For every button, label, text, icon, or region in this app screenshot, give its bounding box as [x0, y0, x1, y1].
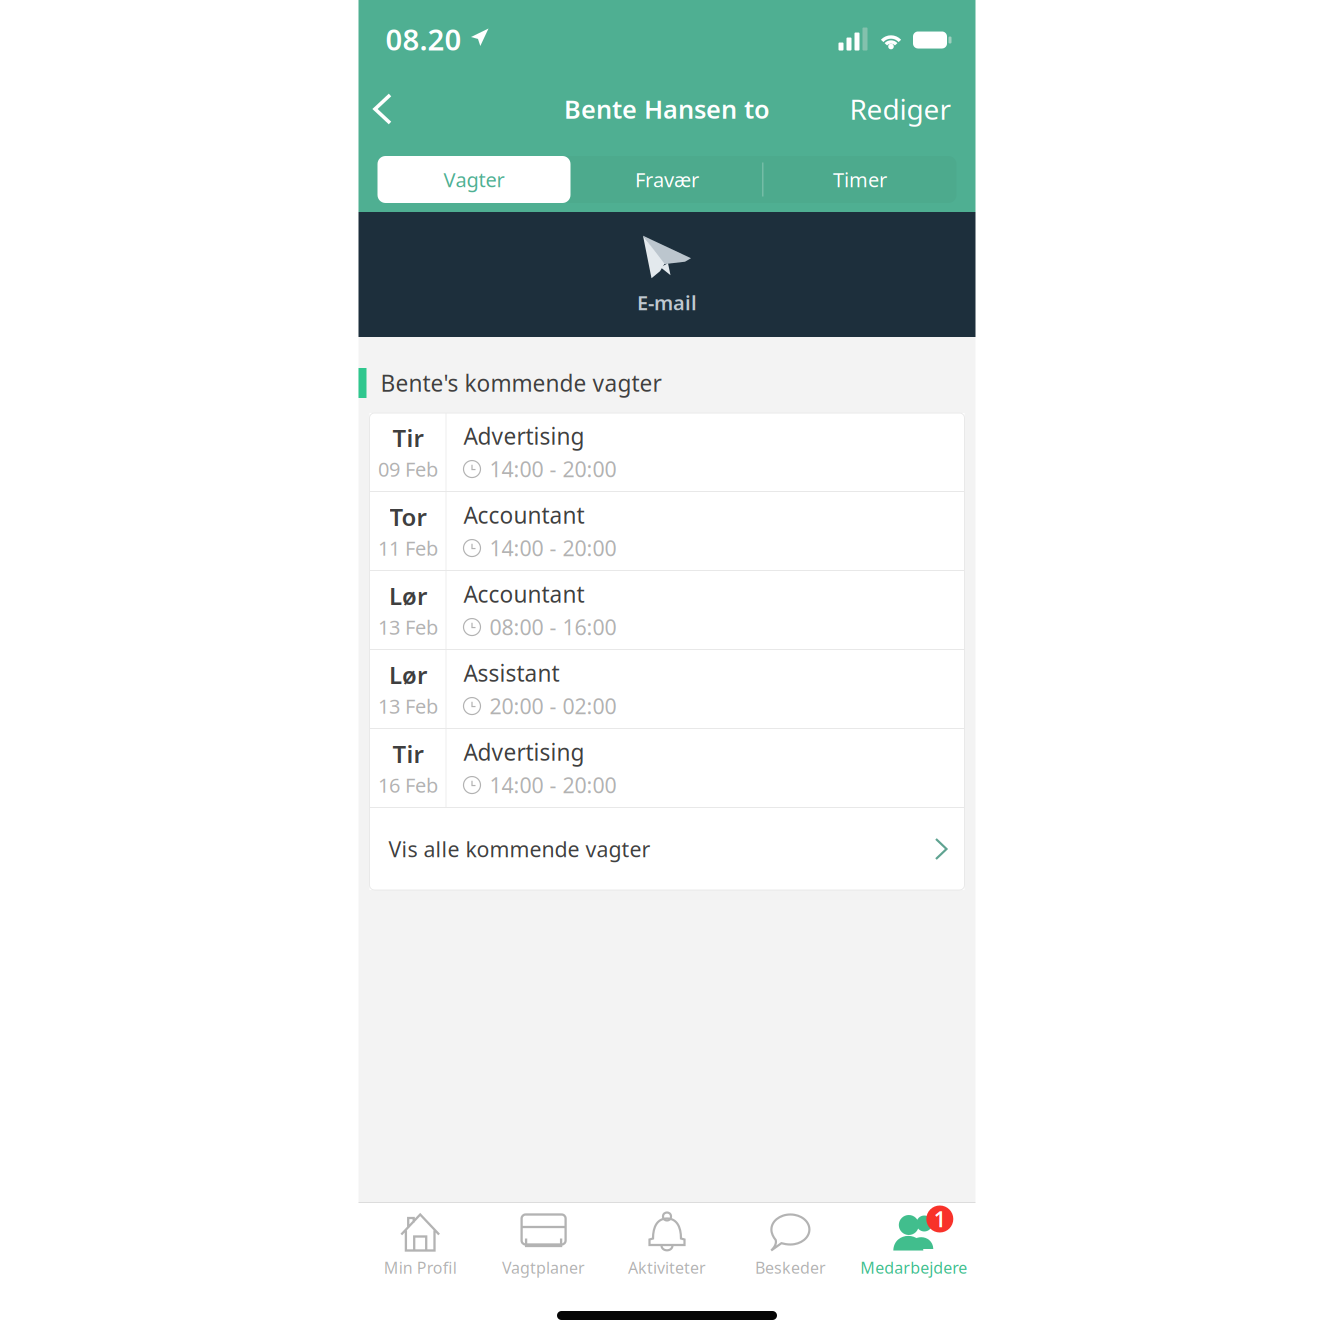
staticText: Vagter: [443, 166, 504, 193]
staticText: Accountant: [463, 500, 584, 530]
staticText: Aktiviteter: [628, 1257, 706, 1278]
staticText: 14:00 - 20:00: [489, 455, 616, 483]
staticText: 09 Feb: [378, 456, 438, 482]
staticText: Tir: [392, 738, 423, 770]
staticText: Tor: [389, 501, 426, 533]
staticText: Accountant: [463, 579, 584, 609]
button[interactable]: Back: [371, 78, 421, 140]
staticText: E-mail: [637, 289, 697, 316]
staticText: 14:00 - 20:00: [489, 534, 616, 562]
button[interactable]: Rediger: [849, 78, 951, 140]
button[interactable]: Tor: [369, 492, 964, 570]
staticText: Min Profil: [384, 1257, 457, 1278]
button[interactable]: Beskeder: [729, 1203, 852, 1279]
staticText: 20:00 - 02:00: [489, 692, 616, 720]
staticText: 14:00 - 20:00: [489, 771, 616, 799]
staticText: Advertising: [463, 737, 584, 767]
button[interactable]: Aktiviteter: [605, 1203, 729, 1279]
staticText: Vis alle kommende vagter: [388, 835, 650, 863]
staticText: 16 Feb: [378, 772, 438, 798]
button[interactable]: Vis alle kommende vagter: [369, 808, 964, 890]
staticText: 08:00 - 16:00: [489, 613, 616, 641]
button[interactable]: Lør: [369, 650, 964, 728]
staticText: Rediger: [849, 90, 951, 128]
staticText: Tir: [392, 422, 423, 454]
button[interactable]: E-mail: [358, 212, 975, 337]
staticText: Fravær: [635, 166, 699, 193]
staticText: Bente's kommende vagter: [380, 368, 661, 398]
button[interactable]: Lør: [369, 571, 964, 649]
staticText: Lør: [389, 580, 427, 612]
button[interactable]: Tir: [369, 413, 964, 491]
staticText: Vagtplaner: [502, 1257, 585, 1278]
button[interactable]: Vagtplaner: [482, 1203, 605, 1279]
staticText: 13 Feb: [378, 614, 438, 640]
button[interactable]: Timer: [763, 156, 956, 203]
staticText: Advertising: [463, 421, 584, 451]
staticText: Assistant: [463, 658, 559, 688]
staticText: 08.20: [385, 19, 461, 58]
staticText: Bente Hansen to: [564, 92, 770, 126]
staticText: Lør: [389, 659, 427, 691]
staticText: 1: [934, 1205, 946, 1233]
staticText: Beskeder: [755, 1257, 826, 1278]
button[interactable]: Tir: [369, 729, 964, 807]
staticText: Medarbejdere: [860, 1257, 967, 1278]
button[interactable]: Vagter: [377, 156, 570, 203]
staticText: 13 Feb: [378, 693, 438, 719]
staticText: 11 Feb: [378, 535, 438, 561]
button[interactable]: Fravær: [570, 156, 763, 203]
button[interactable]: 1: [852, 1203, 975, 1279]
button[interactable]: Min Profil: [358, 1203, 482, 1279]
staticText: Timer: [833, 166, 887, 193]
